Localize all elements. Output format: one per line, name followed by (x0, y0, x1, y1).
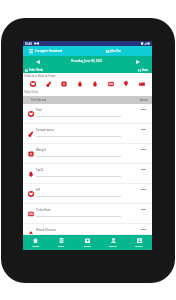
button[interactable]: Meds (74, 235, 100, 250)
staticText: Action (140, 98, 149, 102)
button[interactable]: Profile (126, 235, 152, 250)
staticText: Vitals (58, 244, 65, 247)
staticText: Test Record (31, 98, 47, 102)
staticText: Take Vitals (29, 68, 43, 72)
button[interactable]: Menu (28, 48, 34, 54)
staticText: John Doe (110, 49, 122, 53)
staticText: Temperature (36, 128, 55, 132)
button[interactable]: Home (23, 235, 48, 250)
button[interactable]: Previous day (34, 58, 41, 65)
button[interactable]: SpO2 (23, 164, 152, 184)
button[interactable]: Pain (23, 104, 152, 124)
button[interactable]: Save (137, 68, 150, 72)
staticText: Weight (36, 148, 46, 152)
button[interactable]: Vital 5 (90, 79, 100, 89)
staticText: Daily Vitals (24, 90, 39, 94)
staticText: 10:43 (25, 42, 32, 46)
staticText: Meds (84, 244, 91, 247)
button[interactable]: Doctor (100, 235, 126, 250)
staticText: Home (32, 244, 40, 247)
button[interactable]: Vitals (48, 235, 74, 250)
staticText: Pain (36, 108, 43, 112)
staticText: Profile (135, 244, 143, 247)
staticText: HR (36, 188, 41, 192)
button[interactable]: Vital 8 (137, 79, 147, 89)
button[interactable]: Weight (23, 144, 152, 164)
staticText: Doctor (109, 244, 117, 247)
staticText: Blood Glucose (36, 228, 57, 232)
button[interactable]: Vital 3 (59, 79, 69, 89)
staticText: SpO2 (36, 168, 44, 172)
button[interactable]: Vital 1 (28, 79, 38, 89)
button[interactable]: HR (23, 184, 152, 204)
staticText: Save (142, 68, 149, 72)
button[interactable]: Next day (134, 58, 141, 65)
button[interactable]: Vital 7 (121, 79, 131, 89)
button[interactable]: Temperature (23, 124, 152, 144)
button[interactable]: Blood Glucose (23, 224, 152, 235)
staticText: Caregiver Assistant (35, 49, 63, 53)
button[interactable]: Vital 4 (75, 79, 85, 89)
button[interactable]: Pulse Rate (23, 204, 152, 224)
staticText: Pulse Rate (36, 208, 51, 212)
button[interactable]: Vital 2 (44, 79, 54, 89)
staticText: Choose a Vital to Enter (24, 74, 56, 78)
button[interactable]: Take Vitals (24, 68, 44, 72)
button[interactable]: Vital 6 (106, 79, 116, 89)
staticText: Thursday, June 30, 2022 (71, 59, 103, 63)
button[interactable]: John Doe (105, 48, 123, 54)
